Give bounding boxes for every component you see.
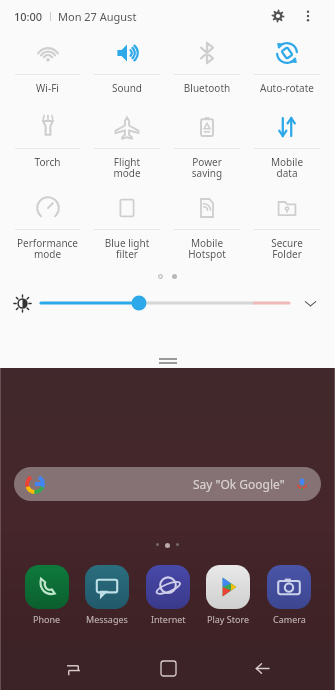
button[interactable]: Sound: [87, 38, 167, 95]
button[interactable]: Mobile data: [247, 112, 327, 180]
staticText: Power saving: [167, 155, 247, 180]
button[interactable]: Torch: [8, 112, 87, 169]
other: Voice search: [295, 477, 309, 491]
button[interactable]: Internet: [146, 565, 190, 625]
button[interactable]: Power saving: [167, 112, 247, 180]
button[interactable]: Blue light filter: [87, 193, 167, 261]
button[interactable]: Bluetooth: [167, 38, 247, 95]
button[interactable]: Auto-rotate: [247, 38, 327, 95]
button[interactable]: Recents: [51, 646, 95, 690]
staticText: Messages: [86, 613, 128, 625]
staticText: Performance mode: [8, 236, 87, 261]
staticText: Sound: [87, 81, 167, 95]
staticText: 10:00: [14, 9, 43, 24]
staticText: Internet: [151, 613, 186, 625]
button[interactable]: Messages: [85, 565, 129, 625]
button[interactable]: Mobile Hotspot: [167, 193, 247, 261]
staticText: Torch: [8, 155, 87, 169]
staticText: Phone: [33, 613, 61, 625]
button[interactable]: Say "Ok Google": [14, 467, 321, 501]
button[interactable]: Performance mode: [8, 193, 87, 261]
staticText: Secure Folder: [247, 236, 327, 261]
button[interactable]: Flight mode: [87, 112, 167, 180]
button[interactable]: Wi-Fi: [8, 38, 87, 95]
button[interactable]: Home: [146, 646, 190, 690]
button[interactable]: Back: [240, 646, 284, 690]
button[interactable]: Camera: [267, 565, 311, 625]
staticText: Bluetooth: [167, 81, 247, 95]
staticText: Wi-Fi: [8, 81, 87, 95]
staticText: Blue light filter: [87, 236, 167, 261]
button[interactable]: Play Store: [206, 565, 250, 625]
button[interactable]: Settings: [265, 3, 291, 29]
button[interactable]: Phone: [25, 565, 69, 625]
staticText: Say "Ok Google": [193, 476, 285, 492]
staticText: Flight mode: [87, 155, 167, 180]
button[interactable]: Expand brightness settings: [299, 292, 321, 314]
staticText: Mobile Hotspot: [167, 236, 247, 261]
button[interactable]: More options: [295, 3, 321, 29]
staticText: Auto-rotate: [247, 81, 327, 95]
button[interactable]: Secure Folder: [247, 193, 327, 261]
staticText: Play Store: [207, 613, 249, 625]
staticText: Mon 27 August: [58, 9, 137, 24]
button[interactable]: [41, 292, 289, 314]
staticText: Camera: [273, 613, 306, 625]
staticText: Mobile data: [247, 155, 327, 180]
